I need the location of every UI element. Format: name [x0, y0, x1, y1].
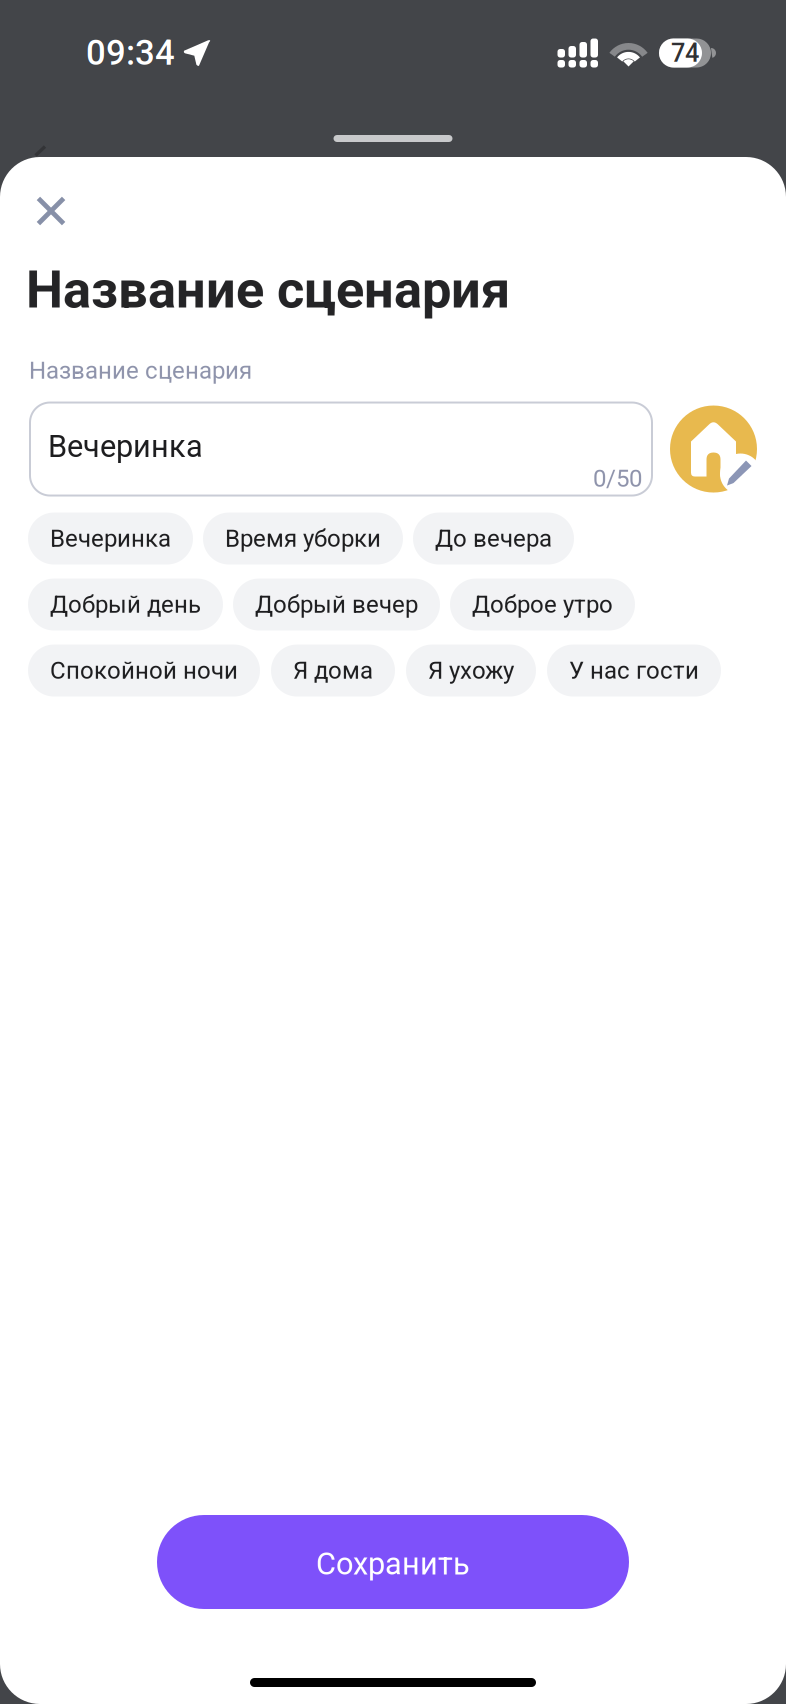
- button[interactable]: Доброе утро: [450, 578, 635, 630]
- staticText: Вечеринка: [48, 428, 203, 464]
- button[interactable]: Я ухожу: [406, 644, 536, 696]
- staticText: Вечеринка: [50, 524, 171, 553]
- staticText: Я дома: [293, 656, 373, 685]
- staticText: До вечера: [435, 524, 552, 553]
- staticText: Добрый вечер: [255, 590, 418, 619]
- staticText: Доброе утро: [472, 590, 613, 619]
- staticText: 74: [671, 38, 699, 68]
- button[interactable]: Добрый день: [28, 578, 223, 630]
- staticText: 09:34: [86, 33, 175, 73]
- button[interactable]: Сохранить: [157, 1515, 629, 1609]
- button[interactable]: Время уборки: [203, 512, 403, 564]
- button[interactable]: До вечера: [413, 512, 574, 564]
- button[interactable]: У нас гости: [547, 644, 721, 696]
- staticText: Сохранить: [316, 1546, 470, 1582]
- button[interactable]: Добрый вечер: [233, 578, 440, 630]
- staticText: Спокойной ночи: [50, 656, 238, 685]
- staticText: Я ухожу: [428, 656, 514, 685]
- staticText: Название сценария: [26, 259, 510, 320]
- staticText: Время уборки: [225, 524, 381, 553]
- button[interactable]: Спокойной ночи: [28, 644, 260, 696]
- button[interactable]: Вечеринка: [30, 402, 652, 495]
- staticText: У нас гости: [569, 656, 699, 685]
- staticText: Название сценария: [29, 356, 252, 384]
- button[interactable]: Вечеринка: [28, 512, 193, 564]
- staticText: 0/50: [593, 464, 642, 492]
- button[interactable]: Close: [19, 183, 83, 239]
- staticText: Добрый день: [50, 590, 201, 619]
- button[interactable]: Change scenario icon: [670, 405, 757, 492]
- button[interactable]: Я дома: [271, 644, 395, 696]
